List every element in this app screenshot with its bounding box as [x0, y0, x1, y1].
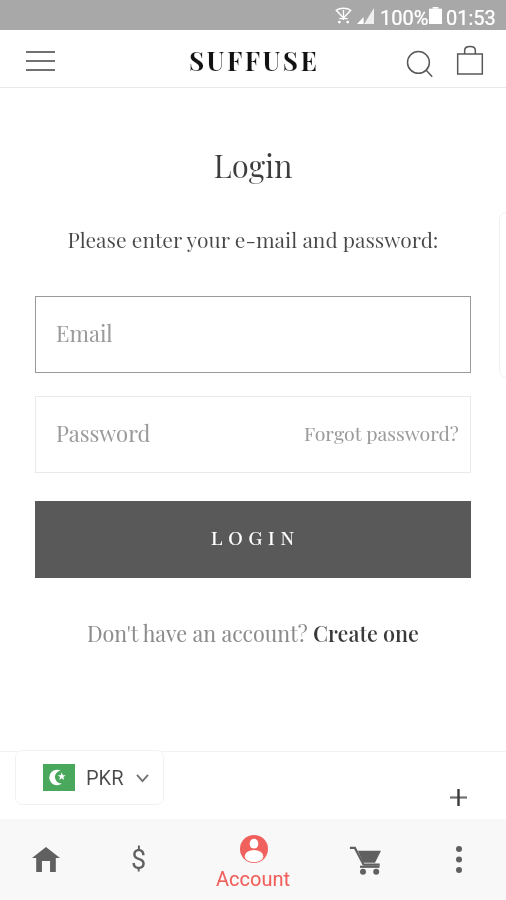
staticText: LOGIN: [211, 524, 301, 550]
button[interactable]: Home: [0, 819, 92, 900]
button[interactable]: Shopping bag: [447, 36, 493, 82]
button[interactable]: Currency: [92, 819, 185, 900]
button[interactable]: Search: [397, 42, 443, 88]
staticText: 01:53: [446, 6, 496, 29]
staticText: Password: [56, 418, 151, 447]
staticText: SUFFUSE: [189, 43, 320, 78]
button[interactable]: Cart: [321, 819, 411, 900]
button[interactable]: LOGIN: [35, 501, 471, 578]
button[interactable]: Menu: [11, 32, 69, 90]
staticText: Email: [56, 318, 113, 347]
button[interactable]: Account: [185, 819, 321, 900]
staticText: Don't have an account?: [87, 619, 313, 648]
button[interactable]: Password: [35, 396, 471, 473]
button[interactable]: Email: [35, 296, 471, 373]
staticText: PKR: [86, 766, 124, 789]
staticText: Account: [216, 867, 291, 890]
staticText: $: [131, 844, 147, 876]
button[interactable]: More options: [411, 819, 506, 900]
button[interactable]: Create one: [313, 619, 419, 648]
staticText: 100%: [380, 6, 429, 29]
staticText: Login: [0, 144, 506, 185]
button[interactable]: PKR: [15, 750, 164, 805]
staticText: Please enter your e-mail and password:: [0, 225, 506, 253]
button[interactable]: Forgot password?: [304, 422, 471, 448]
